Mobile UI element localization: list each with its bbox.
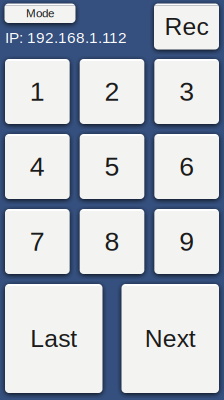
staticText: Mode	[26, 7, 54, 20]
staticText: Next	[145, 325, 196, 352]
button[interactable]: Rec	[154, 3, 219, 49]
staticText: 2	[104, 77, 119, 106]
button[interactable]: 5	[80, 134, 144, 199]
button[interactable]: 1	[5, 59, 70, 124]
staticText: 3	[179, 77, 194, 106]
staticText: Last	[30, 325, 77, 352]
staticText: IP: 192.168.1.112	[5, 29, 127, 46]
staticText: 5	[104, 152, 119, 181]
button[interactable]: Mode	[4, 3, 75, 23]
button[interactable]: 2	[80, 59, 144, 124]
button[interactable]: Last	[5, 284, 102, 393]
staticText: 6	[179, 152, 194, 181]
staticText: Rec	[164, 13, 208, 40]
button[interactable]: 4	[5, 134, 70, 199]
button[interactable]: 9	[154, 209, 219, 274]
button[interactable]: 3	[154, 59, 219, 124]
staticText: 8	[104, 227, 119, 256]
staticText: 1	[30, 77, 45, 106]
button[interactable]: 8	[80, 209, 144, 274]
staticText: 4	[30, 152, 45, 181]
staticText: 7	[30, 227, 45, 256]
button[interactable]: 7	[5, 209, 70, 274]
staticText: 9	[179, 227, 194, 256]
button[interactable]: 6	[154, 134, 219, 199]
button[interactable]: Next	[121, 284, 219, 393]
